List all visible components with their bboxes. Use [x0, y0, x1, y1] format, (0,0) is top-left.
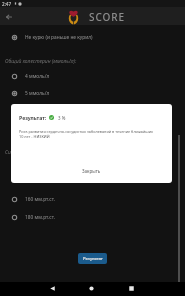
staticText: Общий холестерин (ммоль/л): [5, 58, 77, 65]
button[interactable]: Не курю (и раньше не курил) [0, 29, 185, 45]
button[interactable]: 4 ммоль/л [0, 68, 185, 84]
staticText: Закрыть [82, 168, 101, 174]
button[interactable]: Recents [124, 281, 138, 295]
staticText: 180 мм.рт.ст. [25, 214, 56, 221]
staticText: Систолическое АД (мм.рт.ст.): [5, 149, 80, 156]
button[interactable]: Результат [78, 253, 107, 264]
staticText: Результат: [19, 114, 47, 121]
button[interactable]: Home [84, 281, 98, 295]
staticText: 5 ммоль/л [25, 90, 50, 97]
button[interactable]: Закрыть [76, 166, 107, 176]
staticText: 160 мм.рт.ст. [25, 196, 56, 203]
staticText: Не курю (и раньше не курил) [25, 34, 93, 41]
staticText: SCORE [89, 10, 125, 24]
staticText: 3 % [58, 115, 66, 121]
button[interactable]: 180 мм.рт.ст. [0, 209, 185, 225]
button[interactable]: 5 ммоль/л [0, 85, 185, 101]
staticText: 4 ммоль/л [25, 73, 50, 80]
staticText: 2:47 [2, 1, 12, 7]
button[interactable]: Back [1, 9, 16, 24]
button[interactable]: 160 мм.рт.ст. [0, 191, 185, 207]
staticText: Риск развития сердечно-сосудистых заболе… [19, 129, 153, 139]
staticText: Результат [83, 256, 103, 262]
button[interactable]: Back [45, 281, 59, 295]
